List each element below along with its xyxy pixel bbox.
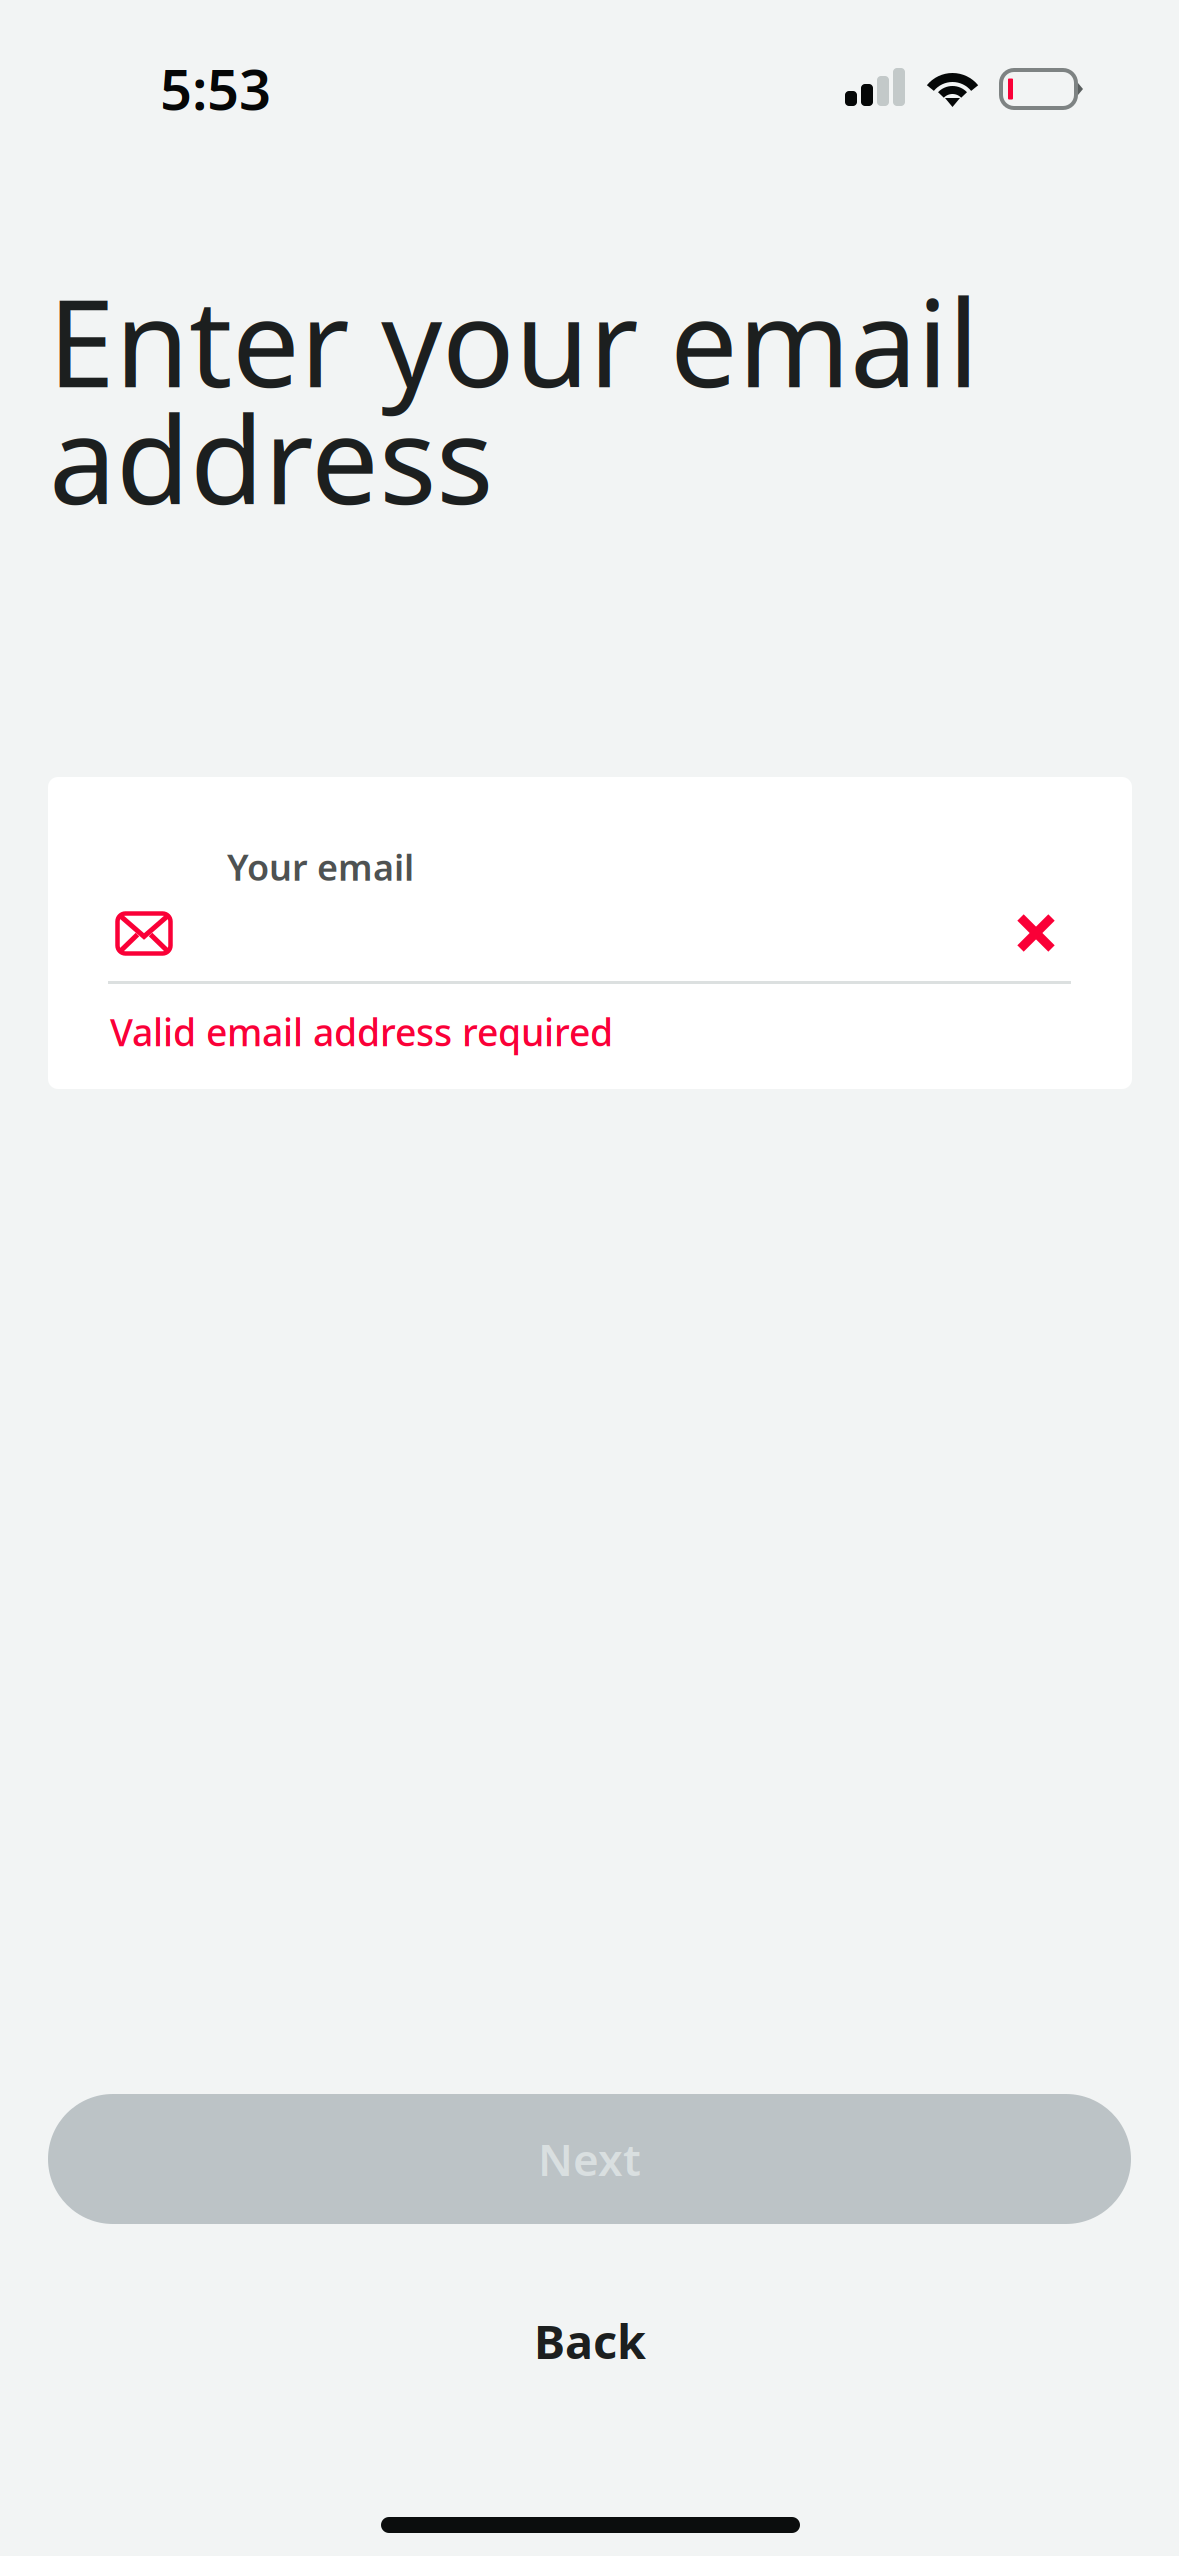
button[interactable]: Your email xyxy=(108,834,1132,984)
staticText: Back xyxy=(534,2310,646,2372)
staticText: Next xyxy=(538,2130,641,2188)
staticText: Your email xyxy=(227,843,414,891)
staticText: Valid email address required xyxy=(110,1007,613,1057)
staticText: Enter your email xyxy=(48,261,979,420)
button[interactable]: Clear email xyxy=(998,895,1074,971)
button[interactable]: Next xyxy=(48,2094,1131,2224)
staticText: address xyxy=(49,378,493,537)
staticText: 5:53 xyxy=(160,51,271,125)
button[interactable]: Back xyxy=(390,2301,790,2381)
